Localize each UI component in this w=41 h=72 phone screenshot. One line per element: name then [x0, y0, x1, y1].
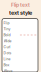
button[interactable]: Box [2, 62, 38, 68]
button[interactable]: Curl [2, 44, 38, 50]
button[interactable]: Line [2, 56, 38, 62]
staticText: Dots [4, 51, 12, 55]
staticText: Line [4, 57, 11, 61]
staticText: Curl [4, 45, 11, 49]
staticText: Tiny [4, 27, 11, 31]
staticText: Flip [4, 21, 10, 25]
button[interactable]: Wide [2, 38, 38, 44]
button[interactable]: Tiny [2, 26, 38, 32]
staticText: Bold [4, 33, 11, 37]
staticText: text style [9, 9, 32, 16]
button[interactable]: Wave [2, 68, 38, 72]
button[interactable]: Dots [2, 50, 38, 56]
button[interactable]: Bold [2, 32, 38, 38]
staticText: Wave [4, 69, 13, 72]
staticText: Box [4, 63, 10, 67]
staticText: Flip text [11, 2, 30, 8]
staticText: Wide [4, 39, 12, 43]
button[interactable]: Flip [2, 20, 38, 26]
